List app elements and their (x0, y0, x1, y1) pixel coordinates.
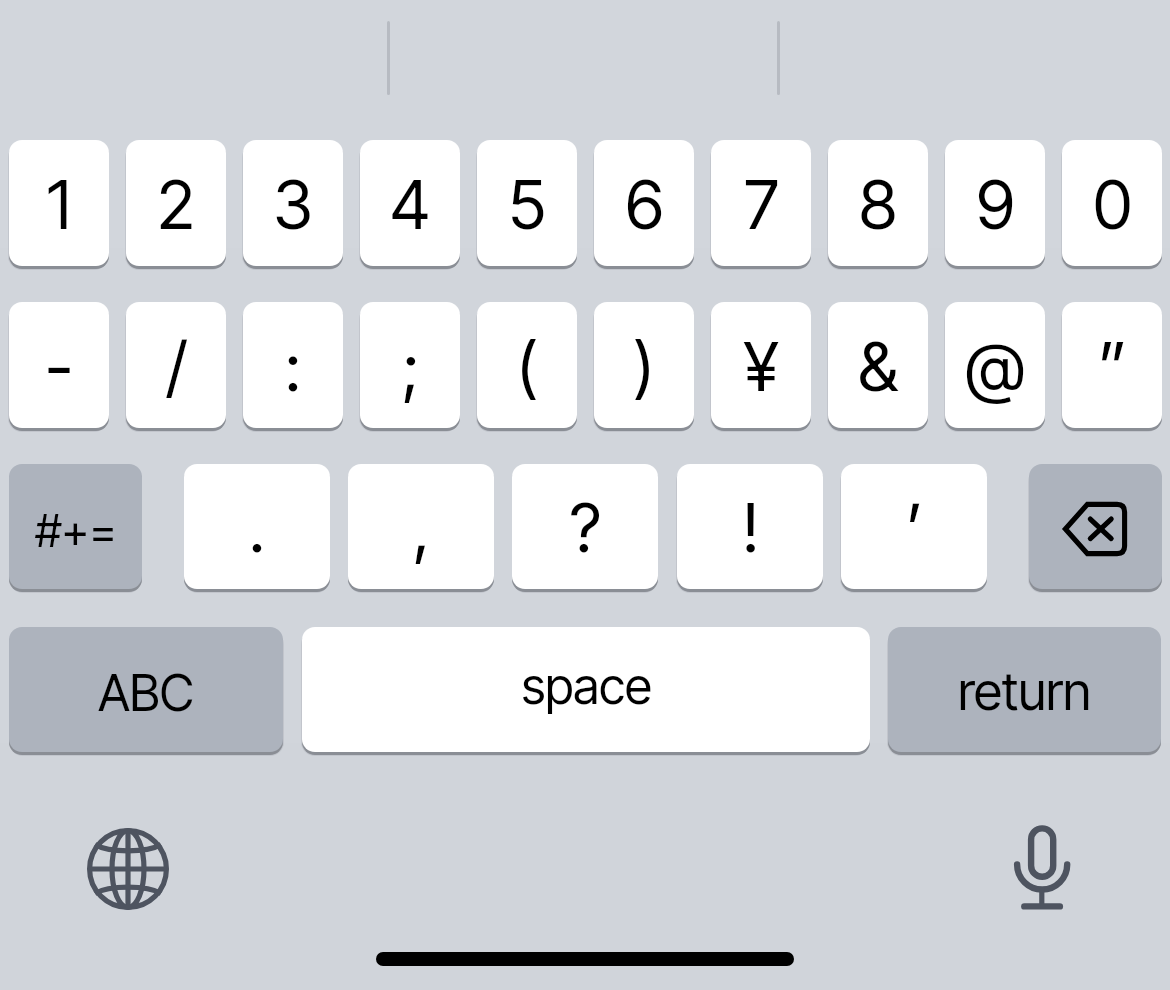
staticText: / (166, 326, 187, 407)
button[interactable]: ’ (841, 464, 987, 589)
staticText: , (413, 487, 430, 568)
button[interactable]: 6 (594, 140, 694, 266)
staticText: 2 (157, 164, 195, 245)
staticText: 5 (508, 164, 546, 245)
button[interactable]: @ (945, 302, 1045, 428)
button[interactable]: 5 (477, 140, 577, 266)
staticText: ? (570, 487, 601, 568)
button[interactable]: 2 (126, 140, 226, 266)
staticText: 4 (390, 164, 430, 245)
staticText: 1 (47, 164, 71, 245)
staticText: 8 (859, 164, 897, 245)
button[interactable]: 0 (1062, 140, 1162, 266)
staticText: 3 (273, 164, 313, 245)
staticText: 7 (744, 164, 779, 245)
staticText: return (958, 660, 1091, 723)
staticText: ¥ (744, 326, 778, 407)
button[interactable]: 8 (828, 140, 928, 266)
button[interactable]: Backspace (1029, 464, 1162, 589)
staticText: ) (633, 326, 655, 407)
button[interactable]: ABC (9, 627, 283, 752)
staticText: space (521, 656, 652, 716)
staticText: ’ (906, 487, 923, 568)
button[interactable]: 1 (9, 140, 109, 266)
staticText: ( (516, 326, 538, 407)
button[interactable]: return (888, 627, 1161, 752)
button[interactable]: . (184, 464, 330, 589)
button[interactable]: , (348, 464, 494, 589)
button[interactable]: Dictate (992, 813, 1092, 921)
staticText: ; (402, 326, 419, 407)
button[interactable]: #+= (9, 464, 142, 589)
staticText: 0 (1093, 164, 1132, 245)
staticText: & (858, 326, 898, 407)
staticText: 9 (976, 164, 1015, 245)
staticText: #+= (35, 503, 117, 557)
staticText: @ (965, 326, 1025, 407)
button[interactable]: 7 (711, 140, 811, 266)
button[interactable]: ( (477, 302, 577, 428)
button[interactable]: & (828, 302, 928, 428)
button[interactable]: ? (512, 464, 658, 589)
button[interactable]: 3 (243, 140, 343, 266)
button[interactable]: ! (677, 464, 823, 589)
staticText: : (285, 326, 301, 407)
staticText: - (45, 326, 73, 407)
staticText: ! (742, 487, 759, 568)
button[interactable]: ¥ (711, 302, 811, 428)
button[interactable]: ) (594, 302, 694, 428)
button[interactable]: 4 (360, 140, 460, 266)
button[interactable]: ; (360, 302, 460, 428)
staticText: ” (1098, 326, 1127, 407)
button[interactable]: - (9, 302, 109, 428)
staticText: . (249, 487, 265, 568)
button[interactable]: : (243, 302, 343, 428)
staticText: 6 (625, 164, 664, 245)
button[interactable]: / (126, 302, 226, 428)
staticText: ABC (98, 663, 194, 723)
button[interactable]: ” (1062, 302, 1162, 428)
button[interactable]: space (302, 627, 870, 752)
button[interactable]: Next keyboard (78, 819, 178, 919)
button[interactable]: 9 (945, 140, 1045, 266)
